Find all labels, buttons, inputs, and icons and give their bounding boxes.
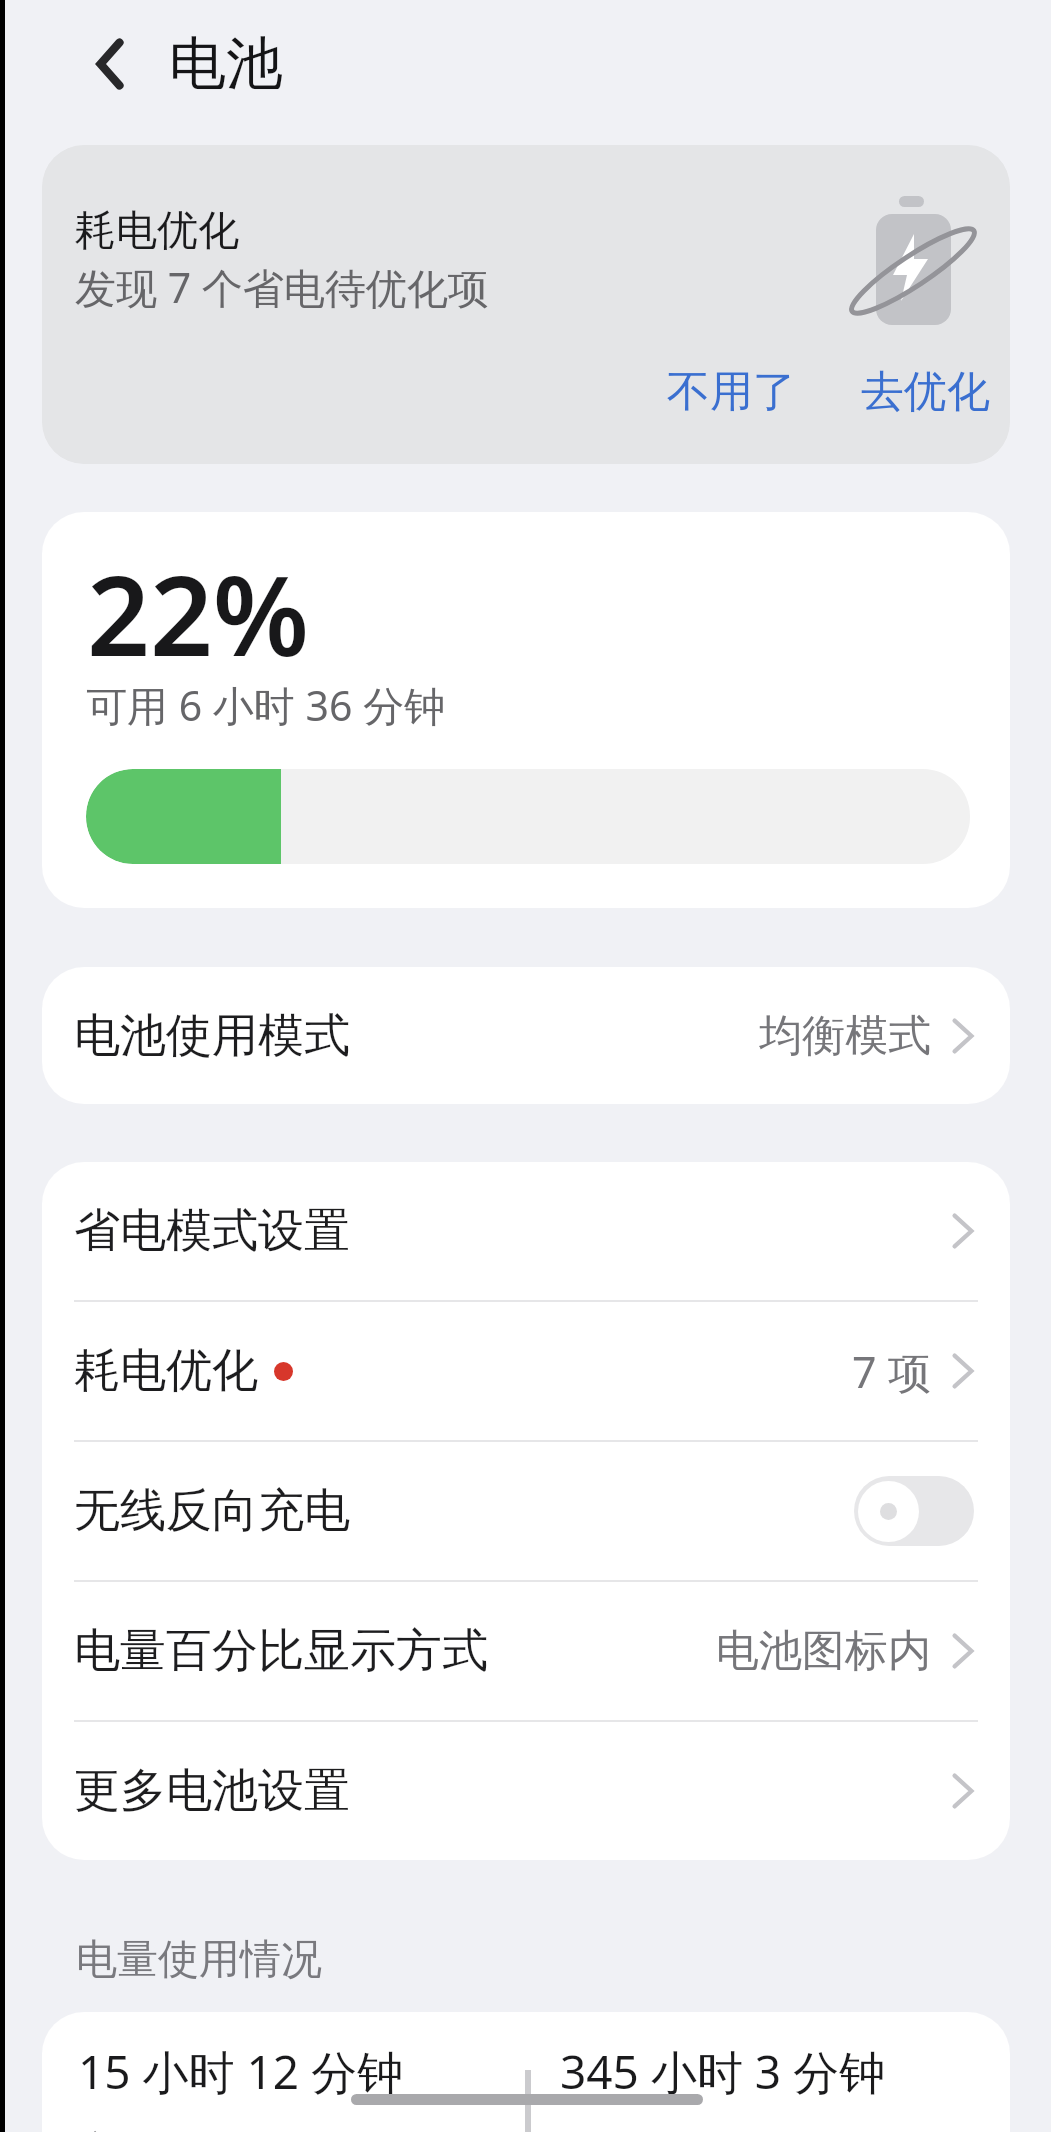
staticText: 电池图标内 [716,1624,931,1678]
staticText: 15 小时 12 分钟 [78,2040,404,2103]
staticText: 均衡模式 [759,1009,931,1063]
staticText: 可用 6 小时 36 分钟 [86,677,445,733]
button[interactable]: Wireless reverse charging [854,1476,974,1546]
staticText: 345 小时 3 分钟 [560,2040,886,2103]
button[interactable]: 耗电优化 [42,1302,1010,1440]
staticText: 电池 [169,28,283,100]
button[interactable]: 不用了 [647,351,816,433]
staticText: 省电模式设置 [74,1202,350,1260]
staticText: 电量百分比显示方式 [74,1622,488,1680]
staticText: 22% [87,538,310,688]
staticText: 电量使用情况 [76,1934,322,1986]
staticText: 无线反向充电 [74,1482,350,1540]
button[interactable]: 更多电池设置 [42,1722,1010,1860]
button[interactable]: 省电模式设置 [42,1162,1010,1300]
staticText: 耗电优化 [74,1342,258,1400]
staticText: 不用了 [667,365,796,419]
button[interactable]: 电量百分比显示方式 [42,1582,1010,1720]
staticText: 更多电池设置 [74,1762,350,1820]
button[interactable]: 无线反向充电 [42,1442,1010,1580]
button[interactable]: 电池使用模式 [42,967,1010,1104]
button[interactable]: Back [67,21,153,107]
staticText: 7 项 [852,1342,931,1401]
staticText: 电池使用模式 [74,1007,350,1065]
staticText: 耗电优化 [75,205,239,257]
staticText: 去优化 [861,365,990,419]
staticText: 发现 7 个省电待优化项 [75,259,489,315]
button[interactable]: 去优化 [841,351,1010,433]
